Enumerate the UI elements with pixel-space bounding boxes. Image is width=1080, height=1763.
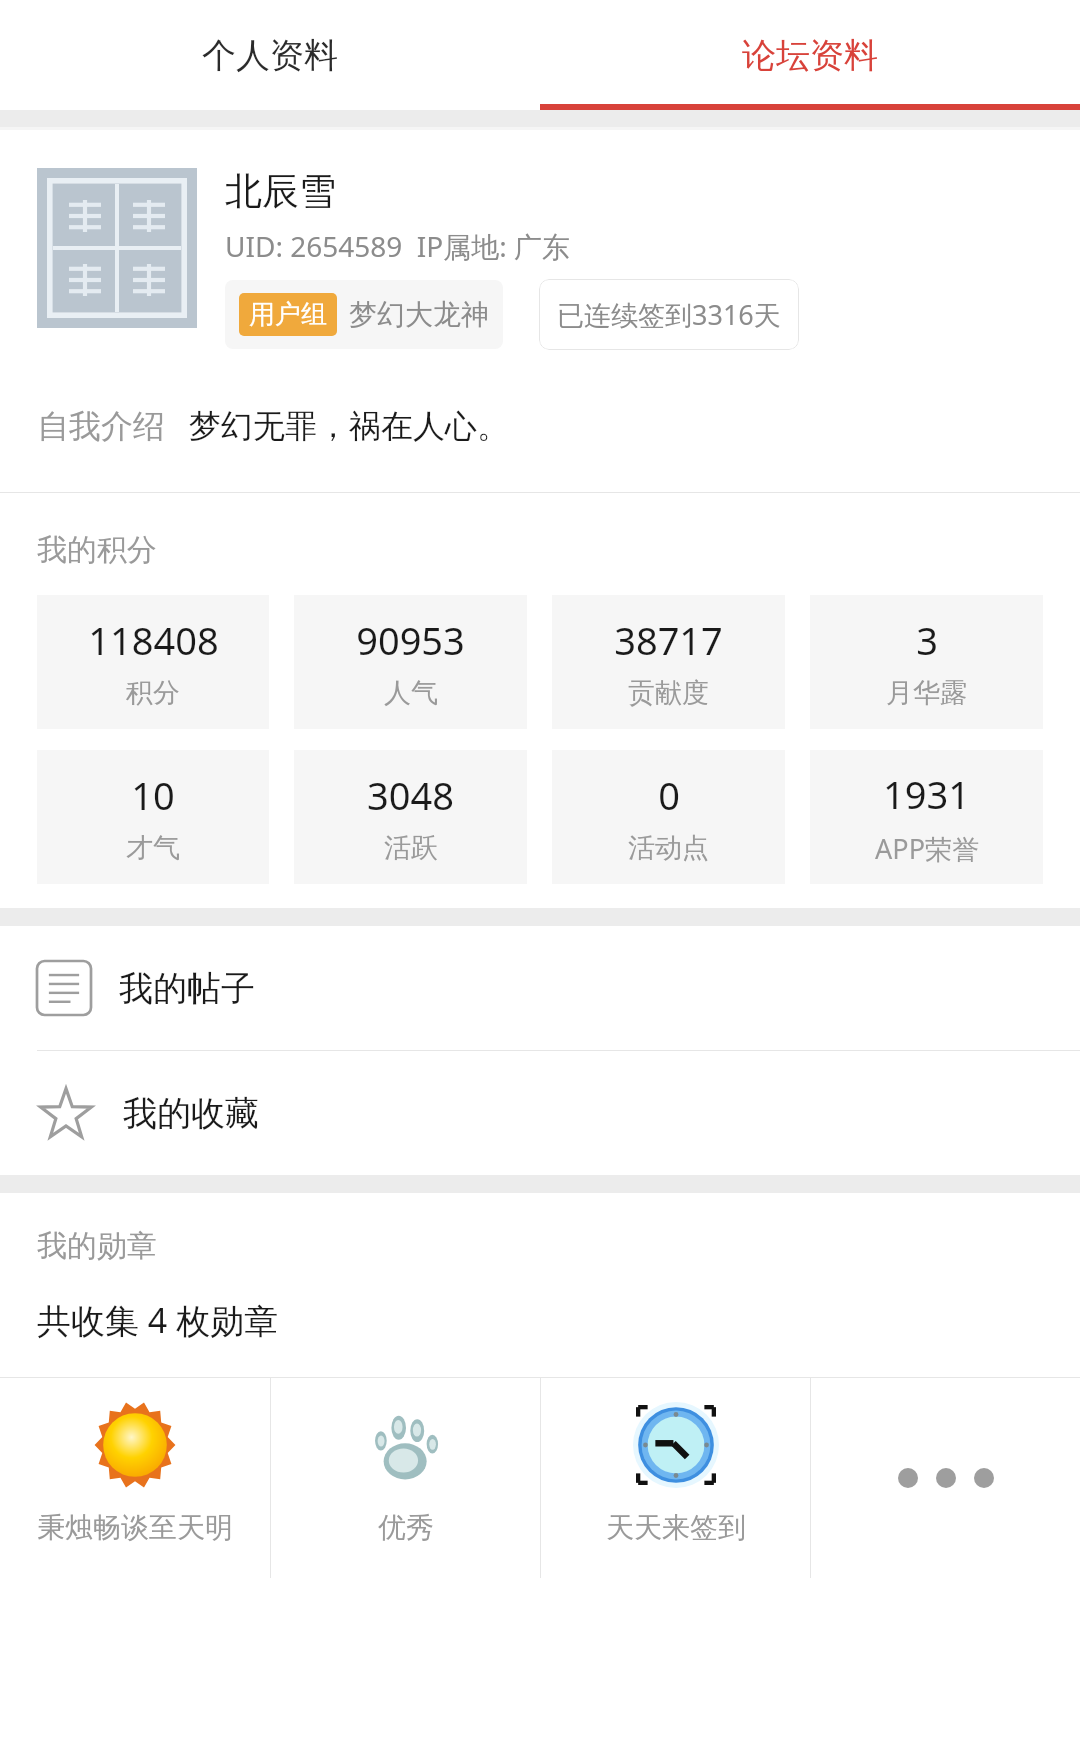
button[interactable]: 用户组 bbox=[225, 280, 503, 349]
staticText: 用户组 bbox=[249, 298, 327, 331]
button[interactable]: 秉烛畅谈至天明 bbox=[0, 1378, 270, 1578]
staticText: 活动点 bbox=[628, 831, 709, 865]
staticText: 月华露 bbox=[886, 676, 967, 710]
staticText: 118408 bbox=[88, 614, 219, 666]
button[interactable]: 头像 bbox=[37, 168, 197, 328]
button[interactable]: 我的收藏 bbox=[0, 1051, 1080, 1175]
button[interactable]: 118408 bbox=[37, 595, 269, 729]
button[interactable]: 1931 bbox=[810, 750, 1043, 884]
staticText: 人气 bbox=[384, 676, 438, 710]
staticText: 北辰雪 bbox=[225, 168, 336, 215]
staticText: 已连续签到3316天 bbox=[557, 296, 781, 333]
staticText: UID: 2654589 IP属地: 广东 bbox=[225, 227, 571, 265]
staticText: 才气 bbox=[126, 831, 180, 865]
button[interactable]: 0 bbox=[552, 750, 785, 884]
staticText: 我的收藏 bbox=[123, 1092, 259, 1135]
button[interactable]: 已连续签到3316天 bbox=[539, 279, 799, 350]
staticText: 38717 bbox=[614, 614, 723, 666]
staticText: 我的积分 bbox=[37, 531, 157, 569]
staticText: 我的帖子 bbox=[119, 967, 255, 1010]
button[interactable]: 天天来签到 bbox=[541, 1378, 810, 1578]
staticText: 秉烛畅谈至天明 bbox=[37, 1510, 233, 1545]
button[interactable]: 更多勋章 bbox=[811, 1378, 1080, 1578]
staticText: 90953 bbox=[356, 614, 465, 666]
button[interactable]: 优秀 bbox=[271, 1378, 540, 1578]
button[interactable]: 个人资料 bbox=[0, 0, 540, 110]
staticText: 梦幻无罪，祸在人心。 bbox=[189, 406, 509, 446]
staticText: 10 bbox=[131, 769, 175, 821]
button[interactable]: 38717 bbox=[552, 595, 785, 729]
button[interactable]: 论坛资料 bbox=[540, 0, 1080, 110]
staticText: 论坛资料 bbox=[742, 34, 878, 77]
staticText: 贡献度 bbox=[628, 676, 709, 710]
staticText: 天天来签到 bbox=[606, 1510, 746, 1545]
staticText: 积分 bbox=[126, 676, 180, 710]
staticText: 优秀 bbox=[378, 1510, 434, 1545]
staticText: 个人资料 bbox=[202, 34, 338, 77]
button[interactable]: 90953 bbox=[294, 595, 527, 729]
staticText: 1931 bbox=[883, 768, 970, 820]
staticText: 活跃 bbox=[384, 831, 438, 865]
staticText: 梦幻大龙神 bbox=[349, 297, 489, 332]
staticText: APP荣誉 bbox=[875, 830, 979, 867]
staticText: 自我介绍 bbox=[37, 406, 165, 446]
button[interactable]: 3048 bbox=[294, 750, 527, 884]
staticText: 3 bbox=[916, 614, 938, 666]
staticText: 0 bbox=[658, 769, 680, 821]
button[interactable]: 3 bbox=[810, 595, 1043, 729]
button[interactable]: 10 bbox=[37, 750, 269, 884]
staticText: 我的勋章 bbox=[37, 1227, 157, 1265]
staticText: 共收集 4 枚勋章 bbox=[37, 1297, 279, 1343]
button[interactable]: 我的帖子 bbox=[0, 926, 1080, 1050]
staticText: 3048 bbox=[367, 769, 454, 821]
